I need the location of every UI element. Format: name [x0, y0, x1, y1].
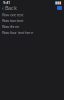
staticText: Row two text	[2, 18, 23, 23]
staticText: Row three	[2, 24, 19, 29]
staticText: 9:41	[3, 0, 10, 5]
staticText: Row four text here	[2, 30, 33, 35]
staticText: Row one text	[2, 12, 23, 17]
staticText: ‹ Back	[2, 4, 17, 12]
staticText: ▮▮▮	[55, 0, 61, 5]
